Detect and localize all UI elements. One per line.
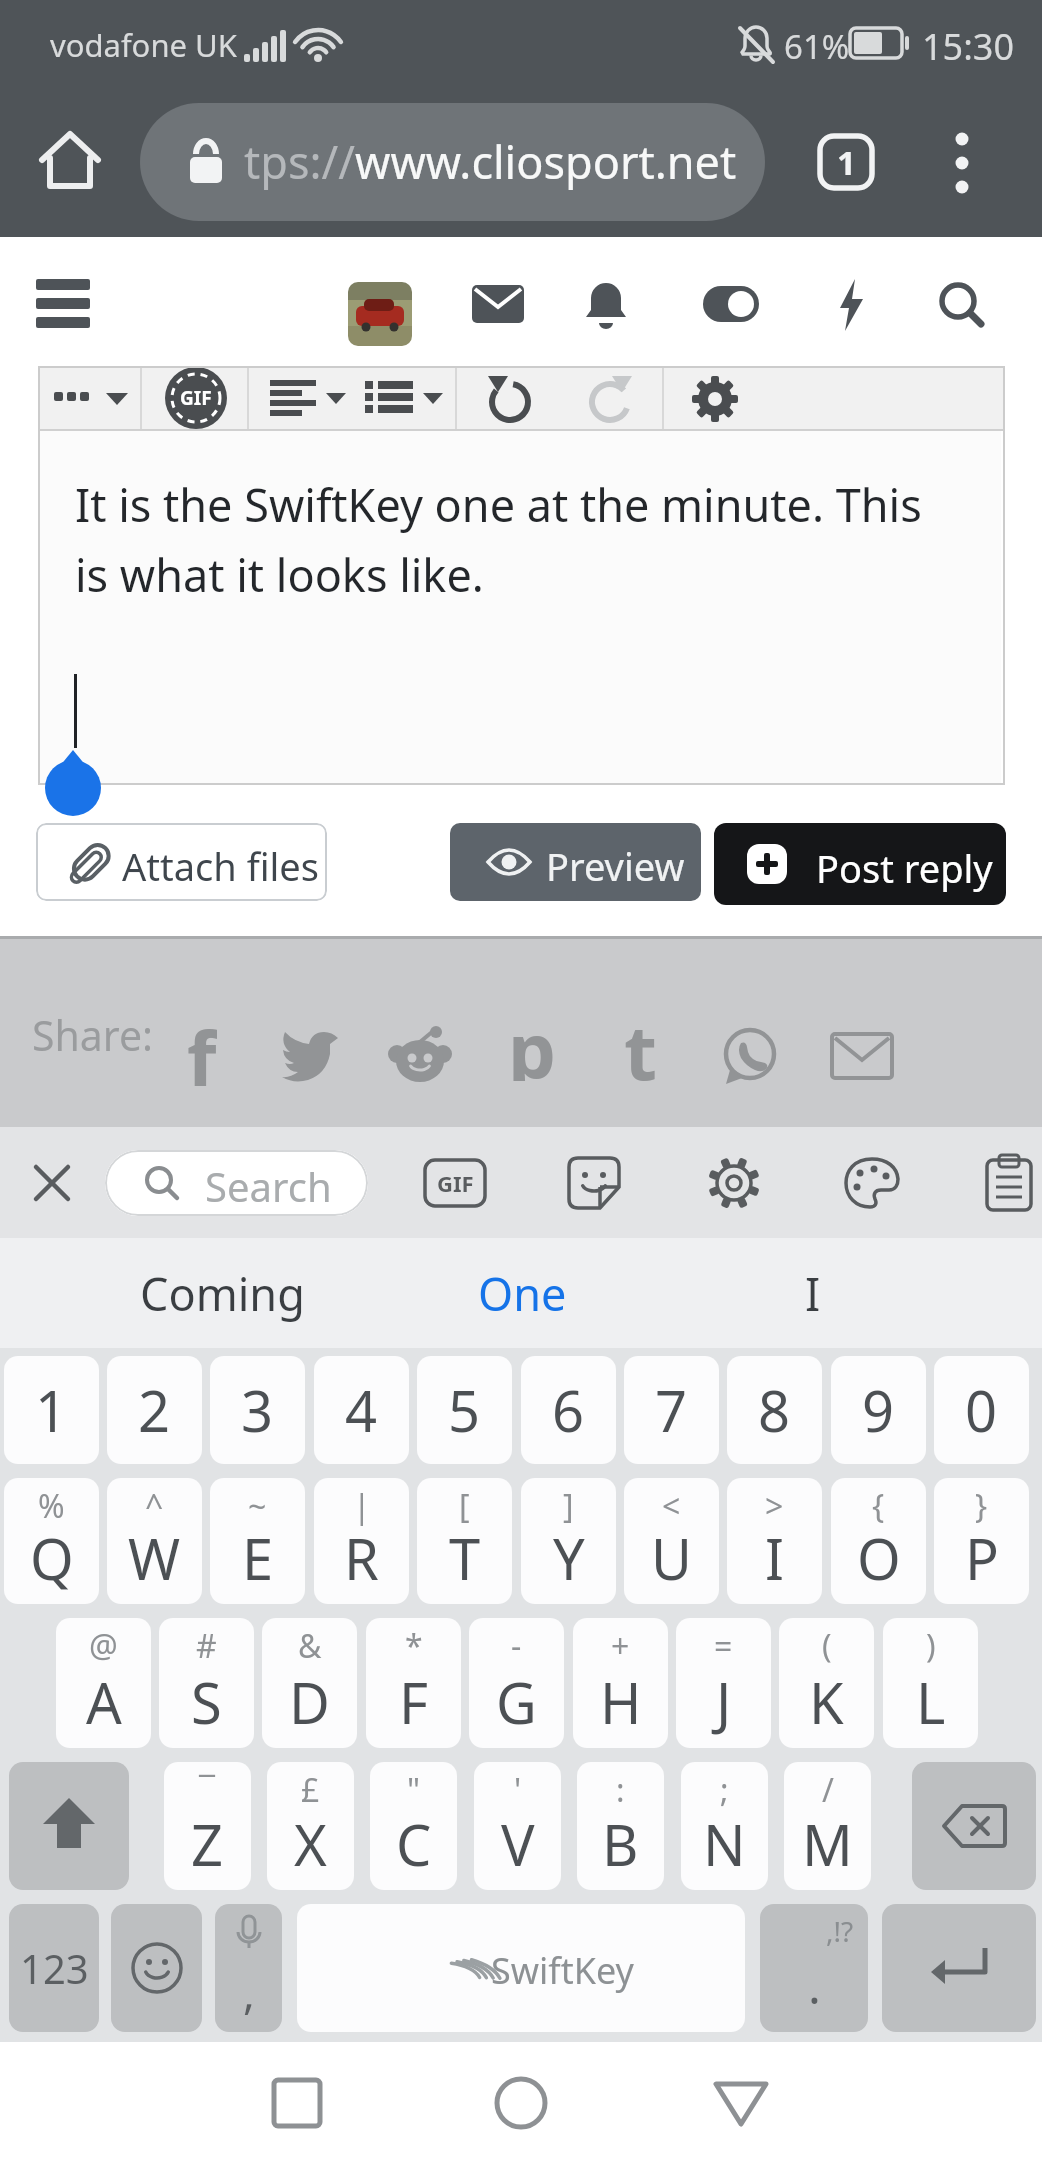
staticText: I	[765, 1520, 784, 1596]
button[interactable]: Attach files	[36, 823, 327, 901]
button[interactable]: Preview	[450, 823, 701, 901]
button[interactable]	[712, 2080, 770, 2128]
button[interactable]	[40, 130, 100, 194]
button[interactable]: ,	[215, 1904, 282, 2032]
button[interactable]: 9	[831, 1356, 926, 1464]
button[interactable]: *	[366, 1618, 461, 1748]
button[interactable]: {	[831, 1478, 926, 1604]
button[interactable]	[584, 281, 628, 329]
button[interactable]: f	[176, 1005, 228, 1089]
staticText: 123	[20, 1941, 89, 1995]
button[interactable]: )	[883, 1618, 978, 1748]
button[interactable]: Post reply	[714, 823, 1006, 905]
button[interactable]	[986, 1155, 1032, 1211]
button[interactable]: 123	[9, 1904, 99, 2032]
button[interactable]: %	[4, 1478, 99, 1604]
button[interactable]: 0	[934, 1356, 1029, 1464]
button[interactable]: ,!?	[760, 1904, 868, 2032]
button[interactable]: p	[506, 997, 558, 1081]
button[interactable]: £	[267, 1762, 354, 1890]
button[interactable]	[912, 1762, 1036, 1890]
staticText: /	[822, 1768, 834, 1812]
staticText: T	[449, 1520, 481, 1596]
button[interactable]: tps://www.cliosport.net	[140, 103, 765, 221]
button[interactable]: 3	[210, 1356, 305, 1464]
button[interactable]	[844, 1157, 900, 1209]
button[interactable]	[708, 1157, 760, 1209]
button[interactable]: ~	[210, 1478, 305, 1604]
button[interactable]	[9, 1762, 129, 1890]
button[interactable]: }	[934, 1478, 1029, 1604]
staticText: L	[916, 1664, 946, 1740]
button[interactable]	[36, 279, 92, 329]
staticText: @	[89, 1624, 118, 1668]
button[interactable]	[832, 1034, 892, 1078]
button[interactable]: 1	[818, 134, 874, 190]
button[interactable]	[272, 2078, 322, 2128]
button[interactable]	[34, 1165, 70, 1201]
button[interactable]: "	[370, 1762, 457, 1890]
staticText: vodafone UK	[50, 24, 237, 66]
button[interactable]: ^	[107, 1478, 202, 1604]
staticText: t	[624, 999, 657, 1083]
button[interactable]	[54, 366, 134, 431]
staticText: =	[714, 1624, 733, 1668]
button[interactable]: ¯	[164, 1762, 251, 1890]
button[interactable]	[494, 2076, 548, 2130]
button[interactable]: Coming	[75, 1238, 370, 1348]
button[interactable]	[938, 281, 986, 329]
button[interactable]: 5	[417, 1356, 512, 1464]
button[interactable]: Search	[105, 1150, 368, 1216]
button[interactable]	[690, 374, 740, 424]
button[interactable]: ]	[521, 1478, 616, 1604]
button[interactable]: [	[417, 1478, 512, 1604]
button[interactable]: t	[614, 999, 666, 1083]
button[interactable]	[703, 286, 759, 322]
button[interactable]: -	[469, 1618, 564, 1748]
button[interactable]: 4	[314, 1356, 409, 1464]
button[interactable]	[348, 282, 412, 346]
button[interactable]: One	[375, 1238, 670, 1348]
button[interactable]	[111, 1904, 202, 2032]
button[interactable]: #	[159, 1618, 254, 1748]
button[interactable]	[882, 1904, 1036, 2032]
button[interactable]	[584, 374, 634, 424]
button[interactable]	[365, 366, 449, 431]
button[interactable]	[282, 1030, 340, 1078]
button[interactable]: :	[577, 1762, 664, 1890]
button[interactable]	[472, 285, 524, 325]
button[interactable]	[270, 366, 350, 431]
button[interactable]: ;	[681, 1762, 768, 1890]
button[interactable]: 2	[107, 1356, 202, 1464]
button[interactable]: I	[665, 1238, 960, 1348]
button[interactable]: |	[314, 1478, 409, 1604]
button[interactable]: GIF	[424, 1159, 486, 1207]
button[interactable]: 7	[624, 1356, 719, 1464]
button[interactable]: '	[474, 1762, 561, 1890]
staticText: G	[496, 1664, 537, 1740]
button[interactable]: (	[779, 1618, 874, 1748]
button[interactable]	[938, 130, 986, 194]
button[interactable]: /	[784, 1762, 871, 1890]
button[interactable]	[390, 1028, 450, 1084]
button[interactable]: &	[262, 1618, 357, 1748]
button[interactable]	[838, 279, 868, 331]
button[interactable]	[568, 1157, 620, 1209]
button[interactable]: =	[676, 1618, 771, 1748]
staticText: GIF	[180, 385, 212, 411]
button[interactable]: <	[624, 1478, 719, 1604]
button[interactable]: SwiftKey	[297, 1904, 745, 2032]
button[interactable]: @	[56, 1618, 151, 1748]
button[interactable]: 8	[727, 1356, 822, 1464]
staticText: >	[765, 1484, 784, 1528]
staticText: is what it looks like.	[75, 544, 484, 605]
button[interactable]	[486, 374, 536, 424]
button[interactable]: GIF	[165, 367, 227, 429]
staticText: J	[716, 1664, 732, 1740]
button[interactable]	[722, 1028, 778, 1084]
button[interactable]: 1	[4, 1356, 99, 1464]
button[interactable]: 6	[521, 1356, 616, 1464]
staticText: <	[662, 1484, 681, 1528]
button[interactable]: +	[573, 1618, 668, 1748]
button[interactable]: >	[727, 1478, 822, 1604]
